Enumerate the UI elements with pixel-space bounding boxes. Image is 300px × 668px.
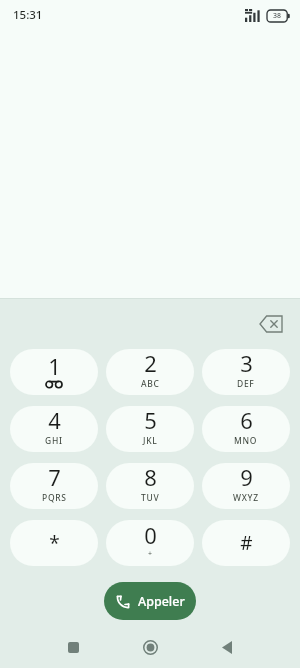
staticText: 8 xyxy=(144,463,157,492)
button[interactable]: Home xyxy=(135,632,165,662)
button[interactable]: 1 xyxy=(10,349,98,395)
staticText: 4 xyxy=(48,406,61,435)
staticText: GHI xyxy=(45,435,63,447)
button[interactable]: # xyxy=(202,520,290,566)
button[interactable]: 6 xyxy=(202,406,290,452)
staticText: 15:31 xyxy=(13,7,43,23)
staticText: MNO xyxy=(234,435,258,447)
staticText: TUV xyxy=(141,492,160,504)
staticText: WXYZ xyxy=(233,492,259,504)
staticText: JKL xyxy=(143,435,158,447)
button[interactable]: Appeler xyxy=(104,582,196,620)
button[interactable]: 3 xyxy=(202,349,290,395)
staticText: 6 xyxy=(240,406,253,435)
button[interactable]: Recents xyxy=(58,632,88,662)
staticText: 1 xyxy=(48,351,61,381)
staticText: 38 xyxy=(273,11,282,21)
staticText: 5 xyxy=(144,406,157,435)
button[interactable]: 7 xyxy=(10,463,98,509)
staticText: DEF xyxy=(237,378,255,390)
staticText: 2 xyxy=(144,349,157,378)
button[interactable]: 0 xyxy=(106,520,194,566)
button[interactable]: 4 xyxy=(10,406,98,452)
staticText: 3 xyxy=(240,349,253,378)
staticText: PQRS xyxy=(42,492,67,504)
button[interactable]: 2 xyxy=(106,349,194,395)
staticText: * xyxy=(49,530,60,556)
staticText: 7 xyxy=(48,463,61,492)
staticText: + xyxy=(148,549,153,559)
button[interactable]: Backspace xyxy=(254,307,288,341)
staticText: 9 xyxy=(240,463,253,492)
button[interactable]: 9 xyxy=(202,463,290,509)
staticText: Appeler xyxy=(138,593,185,610)
staticText: ABC xyxy=(141,378,160,390)
button[interactable]: 5 xyxy=(106,406,194,452)
button[interactable]: Back xyxy=(212,632,242,662)
button[interactable]: 8 xyxy=(106,463,194,509)
staticText: 0 xyxy=(144,520,157,550)
button[interactable]: * xyxy=(10,520,98,566)
staticText: # xyxy=(240,530,253,556)
